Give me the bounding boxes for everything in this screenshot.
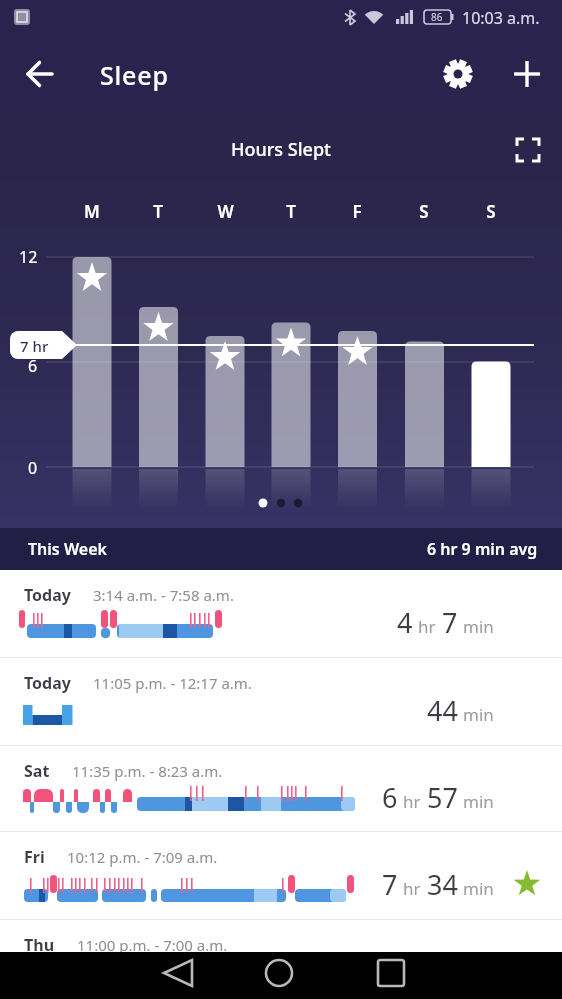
staticText: S [419,200,429,223]
staticText: Hours Slept [231,137,331,162]
staticText: Today [24,584,71,606]
staticText: 34 [427,866,458,903]
staticText: 7 [382,866,398,903]
staticText: 6 [382,779,398,816]
staticText: hr [418,615,436,638]
staticText: 6 [28,355,38,377]
staticText: This Week [28,538,107,560]
button[interactable] [505,52,549,96]
staticText: 6 hr 9 min avg [427,538,538,560]
button[interactable] [363,952,419,999]
staticText: 44 [427,692,458,729]
staticText: 11:05 p.m. - 12:17 a.m. [93,673,252,693]
button[interactable] [506,128,550,172]
staticText: min [463,790,494,813]
staticText: 57 [427,779,458,816]
staticText: 12 [19,246,38,268]
staticText: T [153,200,163,223]
staticText: 10:12 p.m. - 7:09 a.m. [67,847,218,867]
staticText: Fri [24,846,45,868]
staticText: min [463,703,494,726]
staticText: W [217,200,234,223]
button[interactable]: Fri [0,832,562,920]
staticText: hr [403,790,421,813]
staticText: Today [24,672,71,694]
staticText: M [84,200,100,223]
button[interactable] [150,952,206,999]
button[interactable] [16,52,60,96]
staticText: Sleep [100,58,169,92]
staticText: min [463,615,494,638]
staticText: min [463,877,494,900]
staticText: 11:35 p.m. - 8:23 a.m. [72,761,223,781]
staticText: 11:00 p.m. - 7:00 a.m. [77,935,228,955]
button[interactable]: Today [0,658,562,746]
staticText: 0 [28,457,38,479]
staticText: 86 [431,10,443,24]
staticText: 4 [397,604,413,641]
staticText: 7 hr [20,336,49,356]
staticText: 10:03 a.m. [462,7,540,29]
button[interactable]: Today [0,570,562,658]
staticText: Sat [24,760,50,782]
button[interactable] [251,952,307,999]
staticText: F [352,200,362,223]
staticText: T [286,200,296,223]
button[interactable] [436,52,480,96]
staticText: Thu [24,934,55,956]
button[interactable]: Thu [0,920,562,999]
button[interactable]: Sat [0,746,562,832]
staticText: 7 [442,604,458,641]
staticText: S [486,200,496,223]
staticText: hr [403,877,421,900]
staticText: 3:14 a.m. - 7:58 a.m. [93,585,234,605]
